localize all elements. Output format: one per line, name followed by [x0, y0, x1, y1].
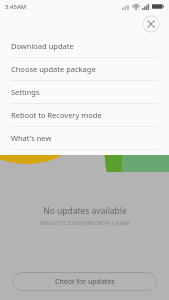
- staticText: Check for updates: [55, 277, 115, 287]
- staticText: Reboot to Recovery mode: [11, 110, 102, 120]
- button[interactable]: Close: [142, 15, 160, 33]
- staticText: No updates available: [43, 205, 127, 217]
- staticText: Download update: [11, 41, 74, 51]
- button[interactable]: Reboot to Recovery mode: [0, 104, 169, 126]
- staticText: 3:45AM: [5, 3, 27, 11]
- button[interactable]: Choose update package: [0, 58, 169, 80]
- button[interactable]: Download update: [0, 35, 169, 57]
- staticText: Choose update package: [11, 64, 96, 74]
- staticText: What's new: [11, 133, 52, 143]
- staticText: Settings: [11, 87, 40, 97]
- button[interactable]: Check for updates: [12, 272, 157, 291]
- button[interactable]: Settings: [0, 81, 169, 103]
- button[interactable]: What's new: [0, 127, 169, 149]
- staticText: MIUI 66.77.33.00(UHMCMCH) | Stable: [40, 220, 130, 227]
